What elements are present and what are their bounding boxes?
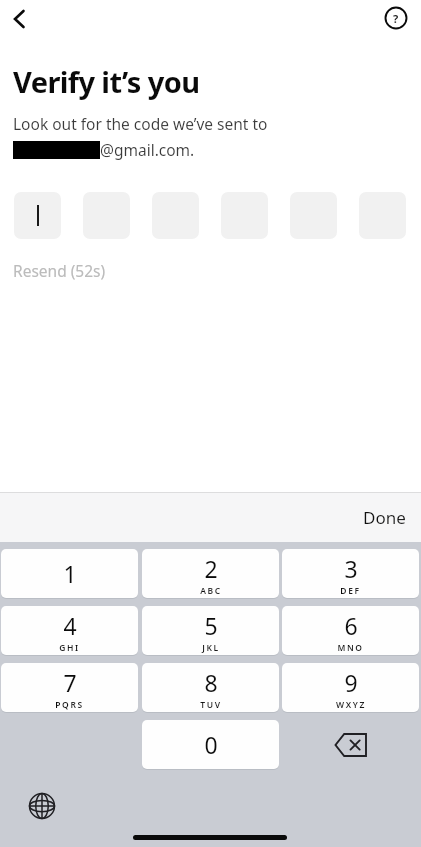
staticText: MNO xyxy=(337,642,364,654)
button[interactable]: 7 xyxy=(1,663,138,712)
button[interactable]: 2 xyxy=(142,549,279,598)
button[interactable]: Change keyboard xyxy=(22,786,62,826)
staticText: ABC xyxy=(200,585,222,597)
staticText: GHI xyxy=(59,642,80,654)
staticText: 6 xyxy=(344,610,358,641)
staticText: @gmail.com. xyxy=(100,139,195,160)
staticText: 1 xyxy=(63,558,77,589)
staticText: 4 xyxy=(63,610,77,641)
button[interactable]: 6 xyxy=(282,606,419,655)
staticText: ? xyxy=(393,11,399,26)
button[interactable]: Resend (52s) xyxy=(13,260,106,281)
button[interactable]: 5 xyxy=(142,606,279,655)
button[interactable]: 8 xyxy=(142,663,279,712)
staticText: 0 xyxy=(204,729,218,760)
button[interactable]: 4 xyxy=(1,606,138,655)
button[interactable]: 1 xyxy=(1,549,138,598)
button[interactable]: Code digit 1 xyxy=(14,192,61,239)
staticText: WXYZ xyxy=(336,699,366,711)
staticText: 3 xyxy=(344,553,358,584)
staticText: 9 xyxy=(344,667,358,698)
button[interactable]: Help xyxy=(379,0,413,34)
button[interactable]: 0 xyxy=(142,720,279,769)
staticText: 5 xyxy=(204,610,218,641)
button[interactable]: 3 xyxy=(282,549,419,598)
button[interactable]: Back xyxy=(2,2,36,36)
staticText: Look out for the code we’ve sent to xyxy=(13,113,268,134)
staticText: JKL xyxy=(202,642,220,654)
staticText: TUV xyxy=(200,699,222,711)
button[interactable]: Backspace xyxy=(282,720,419,769)
staticText: 8 xyxy=(204,667,218,698)
staticText: Done xyxy=(363,506,406,529)
staticText: PQRS xyxy=(55,699,84,711)
staticText: 7 xyxy=(63,667,77,698)
staticText: 2 xyxy=(204,553,218,584)
staticText: Verify it’s you xyxy=(13,62,200,101)
button[interactable]: 9 xyxy=(282,663,419,712)
button[interactable]: Done xyxy=(356,500,413,535)
staticText: DEF xyxy=(340,585,361,597)
